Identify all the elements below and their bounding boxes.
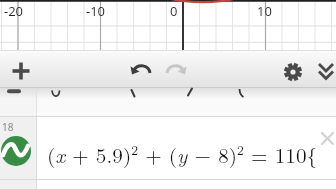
button[interactable]: 18 [0, 117, 336, 179]
button[interactable] [4, 54, 38, 84]
staticText: 18 [2, 120, 14, 134]
staticText: 0 [170, 2, 178, 20]
staticText: -20 [4, 2, 24, 20]
staticText: -10 [86, 2, 106, 20]
button[interactable] [278, 54, 308, 84]
button[interactable] [161, 53, 191, 83]
staticText: (x + 5.9)2 + (y − 8)2 = 110{ [47, 140, 318, 168]
button[interactable] [318, 129, 336, 147]
button[interactable] [312, 54, 336, 84]
staticText: 10 [257, 2, 272, 20]
button[interactable] [126, 53, 156, 83]
